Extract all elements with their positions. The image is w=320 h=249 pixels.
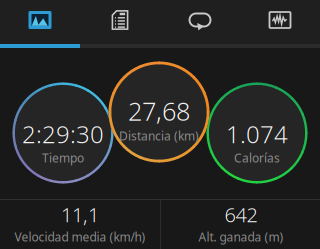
- staticText: Tiempo: [42, 150, 84, 166]
- button[interactable]: Map: [0, 0, 80, 44]
- staticText: Distancia (km): [119, 128, 199, 144]
- staticText: Calorías: [234, 150, 280, 166]
- button[interactable]: 642: [161, 198, 320, 247]
- staticText: 642: [224, 201, 257, 228]
- button[interactable]: Summary: [80, 0, 160, 44]
- button[interactable]: Laps: [160, 0, 240, 44]
- button[interactable]: 11,1: [0, 198, 160, 247]
- staticText: 1.074: [226, 118, 288, 150]
- staticText: 27,68: [128, 94, 190, 128]
- staticText: 11,1: [61, 201, 99, 228]
- staticText: Velocidad media (km/h): [14, 229, 145, 245]
- staticText: Alt. ganada (m): [198, 229, 283, 245]
- staticText: 2:29:30: [22, 118, 104, 150]
- button[interactable]: Charts: [240, 0, 320, 44]
